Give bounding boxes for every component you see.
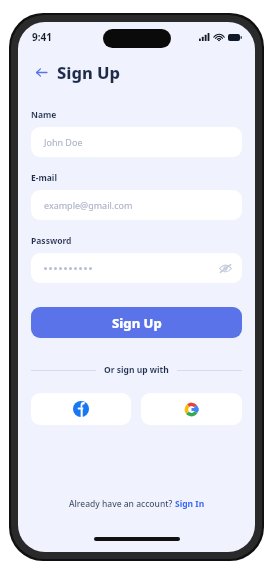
button[interactable]: example@gmail.com — [31, 190, 242, 220]
button[interactable]: Sign up with Google — [141, 393, 242, 425]
button[interactable]: Sign up with Facebook — [31, 393, 131, 425]
staticText: 9:41 — [32, 30, 52, 44]
staticText: Already have an account? — [69, 498, 175, 510]
staticText: Or sign up with — [104, 364, 169, 376]
button[interactable]: Sign In — [175, 498, 205, 510]
staticText: E-mail — [31, 172, 57, 184]
staticText: Name — [31, 109, 57, 121]
button[interactable]: Sign Up — [31, 307, 242, 338]
button[interactable]: Toggle password visibility — [31, 253, 242, 283]
staticText: Password — [31, 235, 72, 247]
staticText: John Doe — [44, 136, 83, 148]
staticText: example@gmail.com — [44, 199, 133, 211]
staticText: Sign Up — [57, 61, 121, 83]
button[interactable]: Back — [31, 62, 51, 82]
staticText: Sign In — [175, 498, 205, 510]
staticText: Sign Up — [112, 314, 162, 332]
button[interactable]: John Doe — [31, 127, 242, 157]
button[interactable]: Toggle password visibility — [217, 260, 233, 276]
